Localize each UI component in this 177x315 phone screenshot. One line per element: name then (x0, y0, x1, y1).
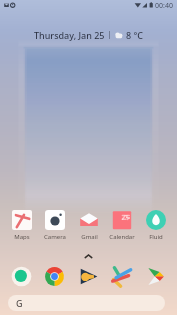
button[interactable]: Play Movies (78, 266, 99, 287)
button[interactable]: Camera (39, 210, 71, 241)
button[interactable]: Gmail (73, 210, 105, 241)
staticText: Maps (14, 233, 30, 241)
staticText: Calendar (109, 233, 135, 241)
staticText: 00:40 (155, 1, 173, 11)
button[interactable]: Messages (11, 266, 32, 287)
button[interactable]: Play Store (145, 266, 166, 287)
staticText: Thursday, Jan 25 (34, 29, 105, 41)
button[interactable]: Fluid (140, 210, 172, 241)
button[interactable]: Maps (6, 210, 38, 241)
staticText: 8 °C (126, 29, 144, 41)
button[interactable]: Search (8, 295, 165, 311)
button[interactable]: Open app drawer (82, 250, 95, 263)
button[interactable]: Chrome (44, 266, 65, 287)
staticText: G (16, 297, 23, 309)
staticText: Camera (44, 233, 66, 241)
staticText: Fluid (149, 233, 163, 241)
button[interactable]: Slack (111, 266, 132, 287)
button[interactable]: Calendar (106, 210, 138, 241)
staticText: Gmail (81, 233, 98, 241)
